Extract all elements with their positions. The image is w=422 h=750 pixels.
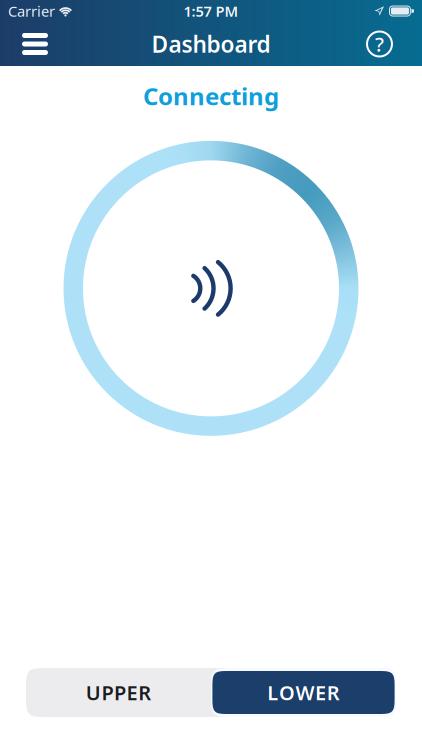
button[interactable]: Menu (0, 22, 60, 66)
staticText: 1:57 PM (183, 1, 238, 21)
staticText: ? (375, 31, 384, 57)
staticText: Connecting (143, 80, 279, 112)
staticText: Dashboard (151, 29, 270, 59)
staticText: UPPER (86, 679, 151, 706)
button[interactable]: LOWER (211, 668, 396, 717)
staticText: Carrier (8, 1, 55, 21)
button[interactable]: UPPER (26, 668, 211, 717)
staticText: LOWER (267, 679, 340, 706)
button[interactable]: Help (354, 22, 422, 65)
